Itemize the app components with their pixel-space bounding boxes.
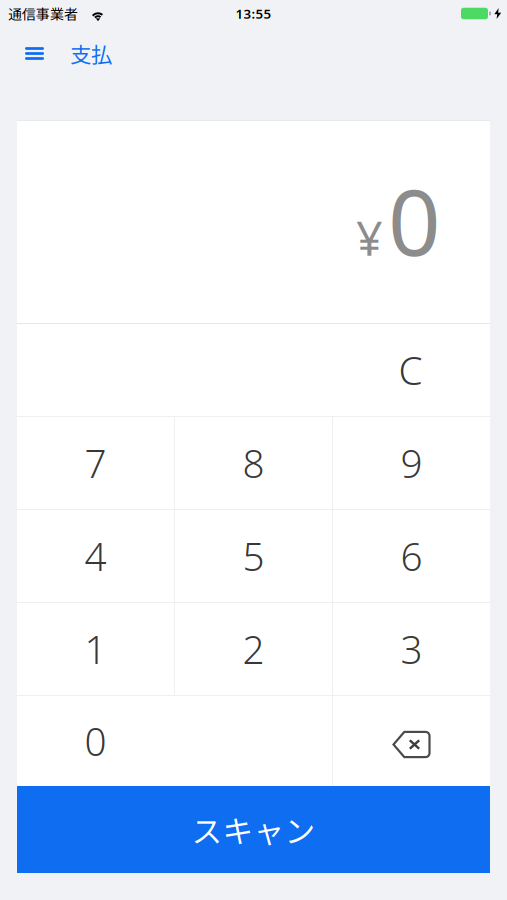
staticText: スキャン	[191, 807, 315, 852]
staticText: 4	[84, 530, 106, 582]
staticText: 3	[400, 623, 422, 675]
button[interactable]: 5	[175, 510, 332, 602]
staticText: 8	[242, 437, 264, 489]
staticText: 2	[242, 623, 264, 675]
button[interactable]: 9	[333, 417, 490, 509]
button[interactable]: 3	[333, 603, 490, 695]
staticText: 0	[388, 159, 441, 281]
button[interactable]: 8	[175, 417, 332, 509]
button[interactable]: 削除	[333, 696, 490, 786]
staticText: ¥	[356, 207, 383, 269]
staticText: 13:55	[235, 5, 271, 22]
staticText: 7	[84, 437, 106, 489]
staticText: C	[398, 344, 422, 396]
staticText: 1	[84, 623, 106, 675]
button[interactable]: スキャン	[17, 786, 490, 873]
staticText: 支払	[70, 38, 112, 69]
button[interactable]: 支払	[54, 38, 112, 69]
button[interactable]: クリア	[331, 324, 490, 416]
staticText: 0	[84, 715, 106, 767]
button[interactable]: メニュー	[0, 31, 54, 75]
button[interactable]: 6	[333, 510, 490, 602]
staticText: 9	[400, 437, 422, 489]
button[interactable]: 1	[17, 603, 174, 695]
button[interactable]: 0	[17, 696, 332, 786]
button[interactable]: 7	[17, 417, 174, 509]
staticText: 通信事業者	[8, 3, 78, 24]
staticText: 5	[242, 530, 264, 582]
staticText: 6	[400, 530, 422, 582]
button[interactable]: 2	[175, 603, 332, 695]
button[interactable]: 4	[17, 510, 174, 602]
